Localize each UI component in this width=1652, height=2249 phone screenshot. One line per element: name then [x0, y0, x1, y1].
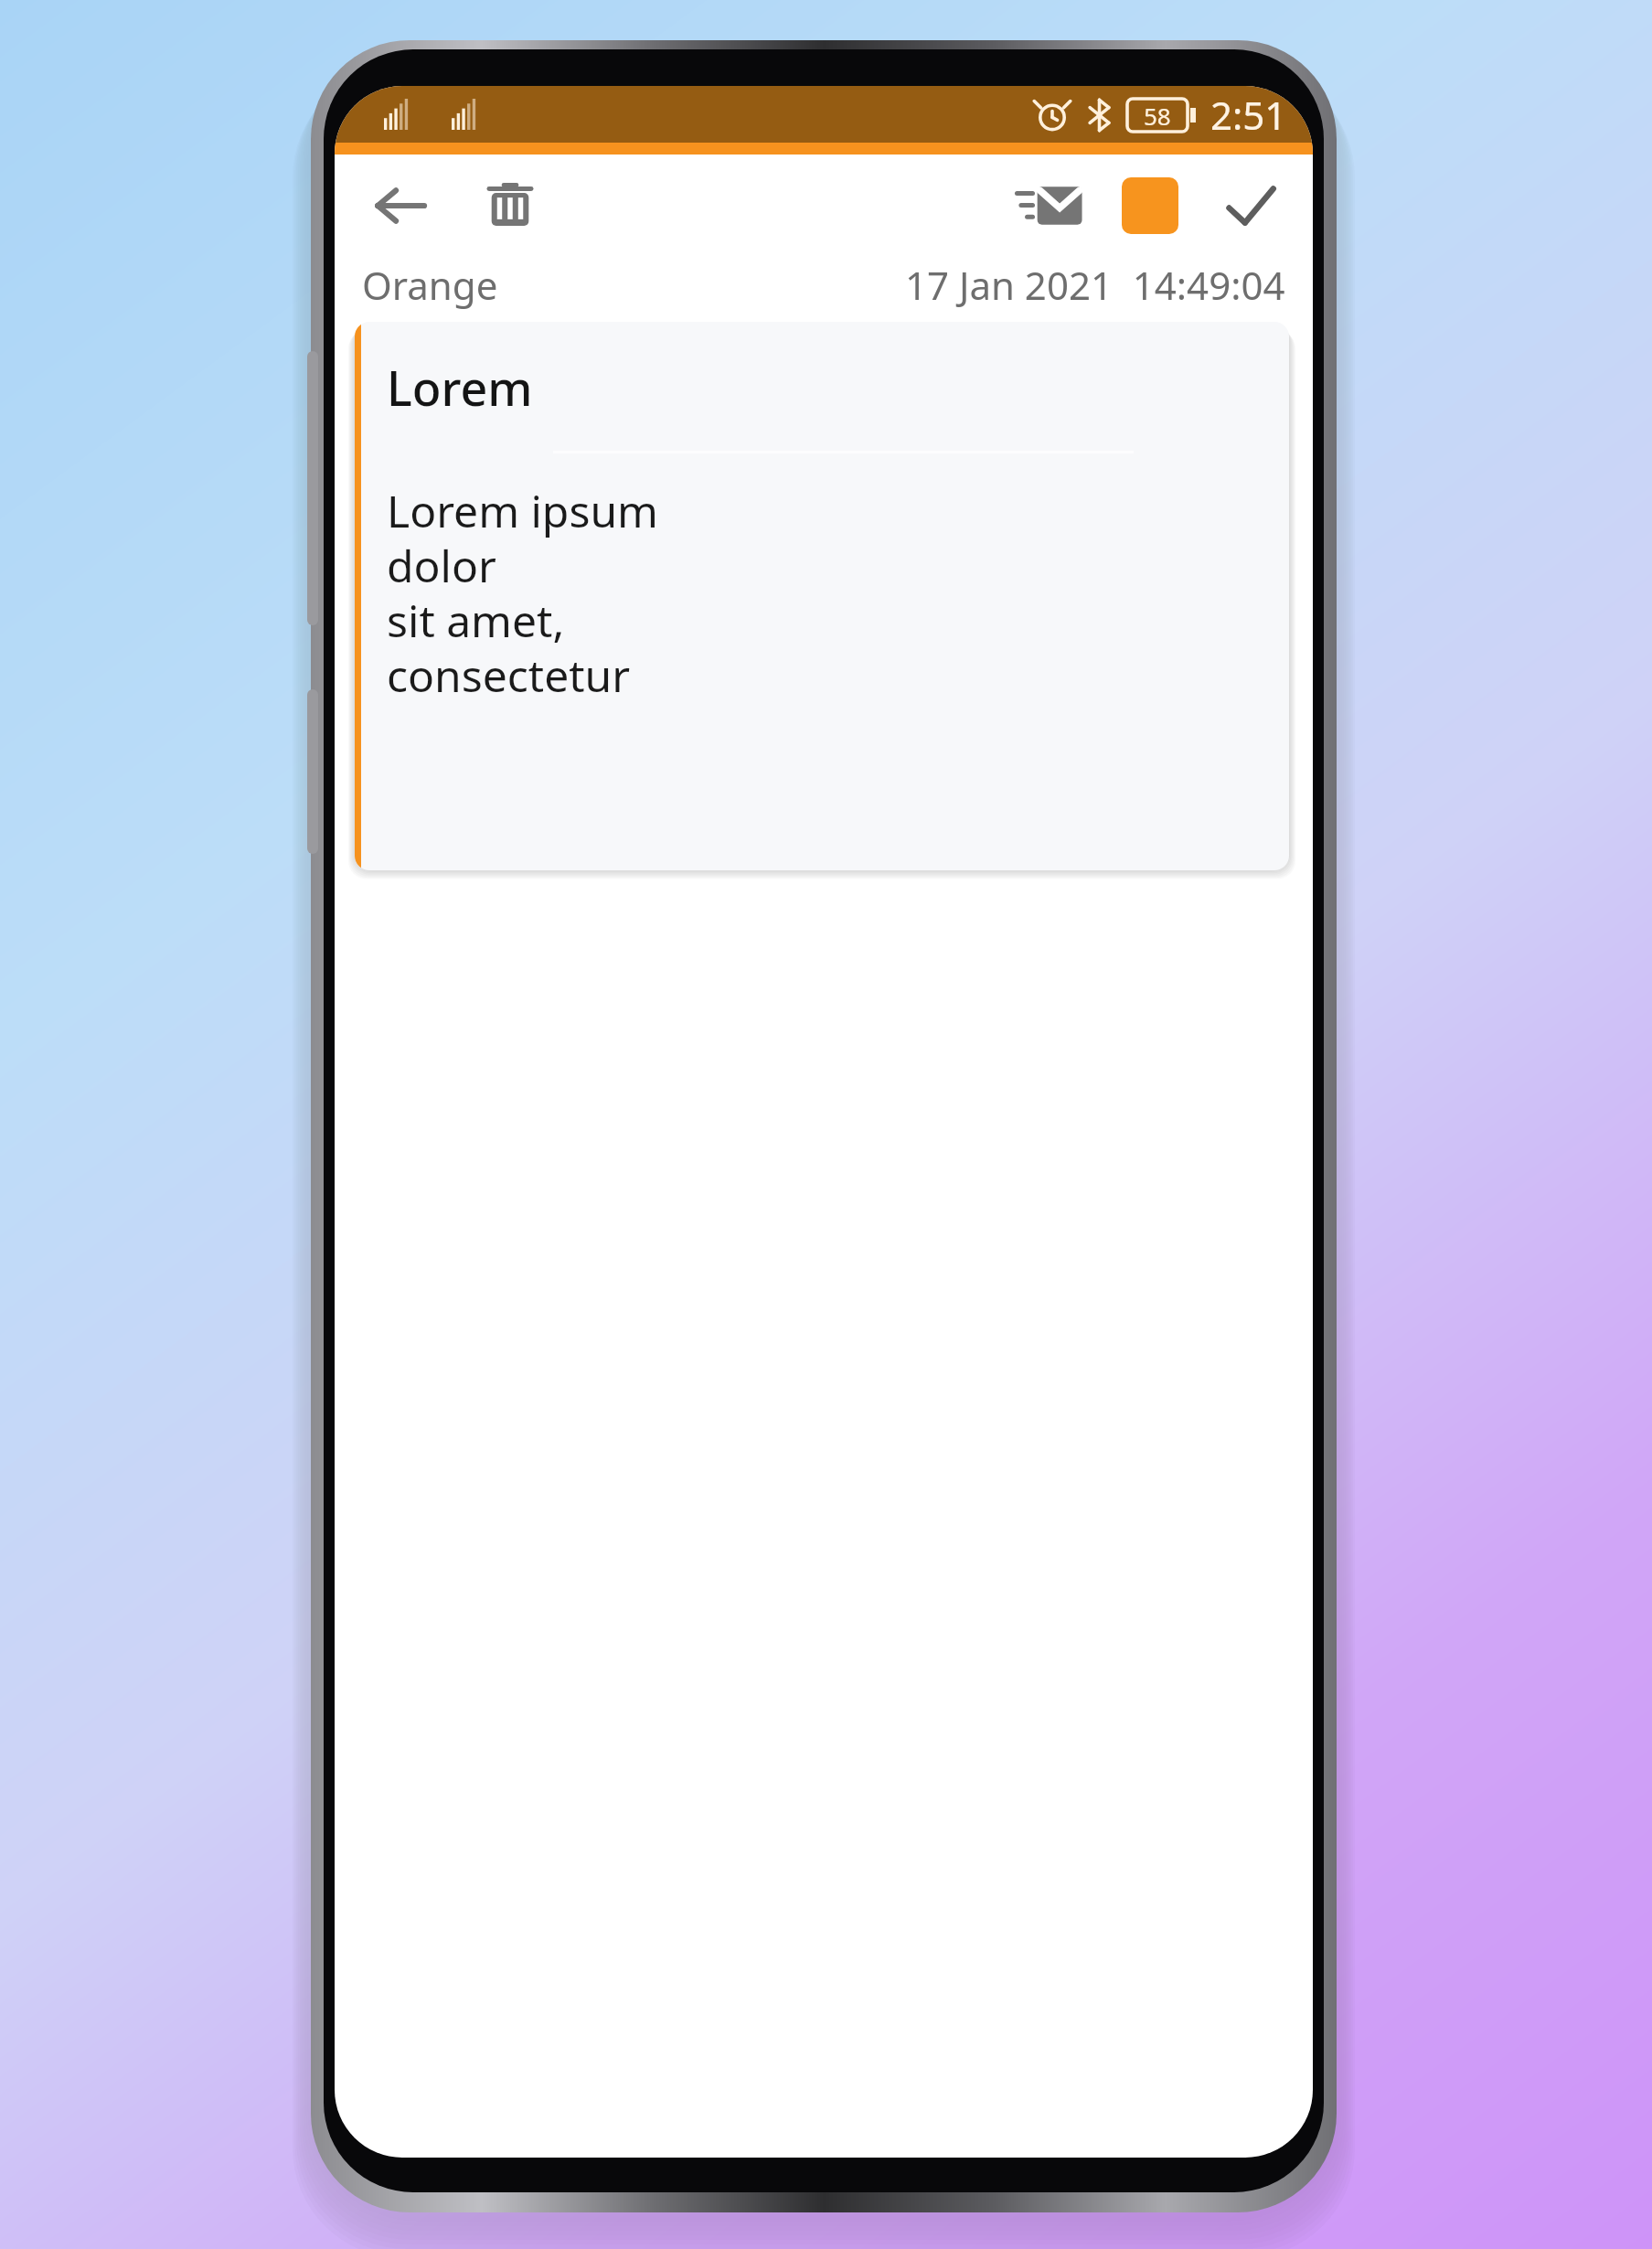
staticText: Lorem ipsum dolor sit amet, consectetur: [387, 481, 658, 705]
button[interactable]: Back: [357, 162, 444, 250]
staticText: 58: [1144, 100, 1171, 132]
staticText: 17 Jan 2021 14:49:04: [905, 259, 1285, 311]
staticText: 2:51: [1210, 89, 1287, 141]
button[interactable]: Send: [1006, 162, 1093, 250]
staticText: Orange: [362, 259, 498, 311]
button[interactable]: Colour: [1106, 162, 1194, 250]
button[interactable]: Delete: [466, 162, 554, 250]
button[interactable]: Save: [1207, 162, 1295, 250]
staticText: Lorem: [387, 355, 533, 420]
button[interactable]: Lorem: [355, 322, 1289, 870]
